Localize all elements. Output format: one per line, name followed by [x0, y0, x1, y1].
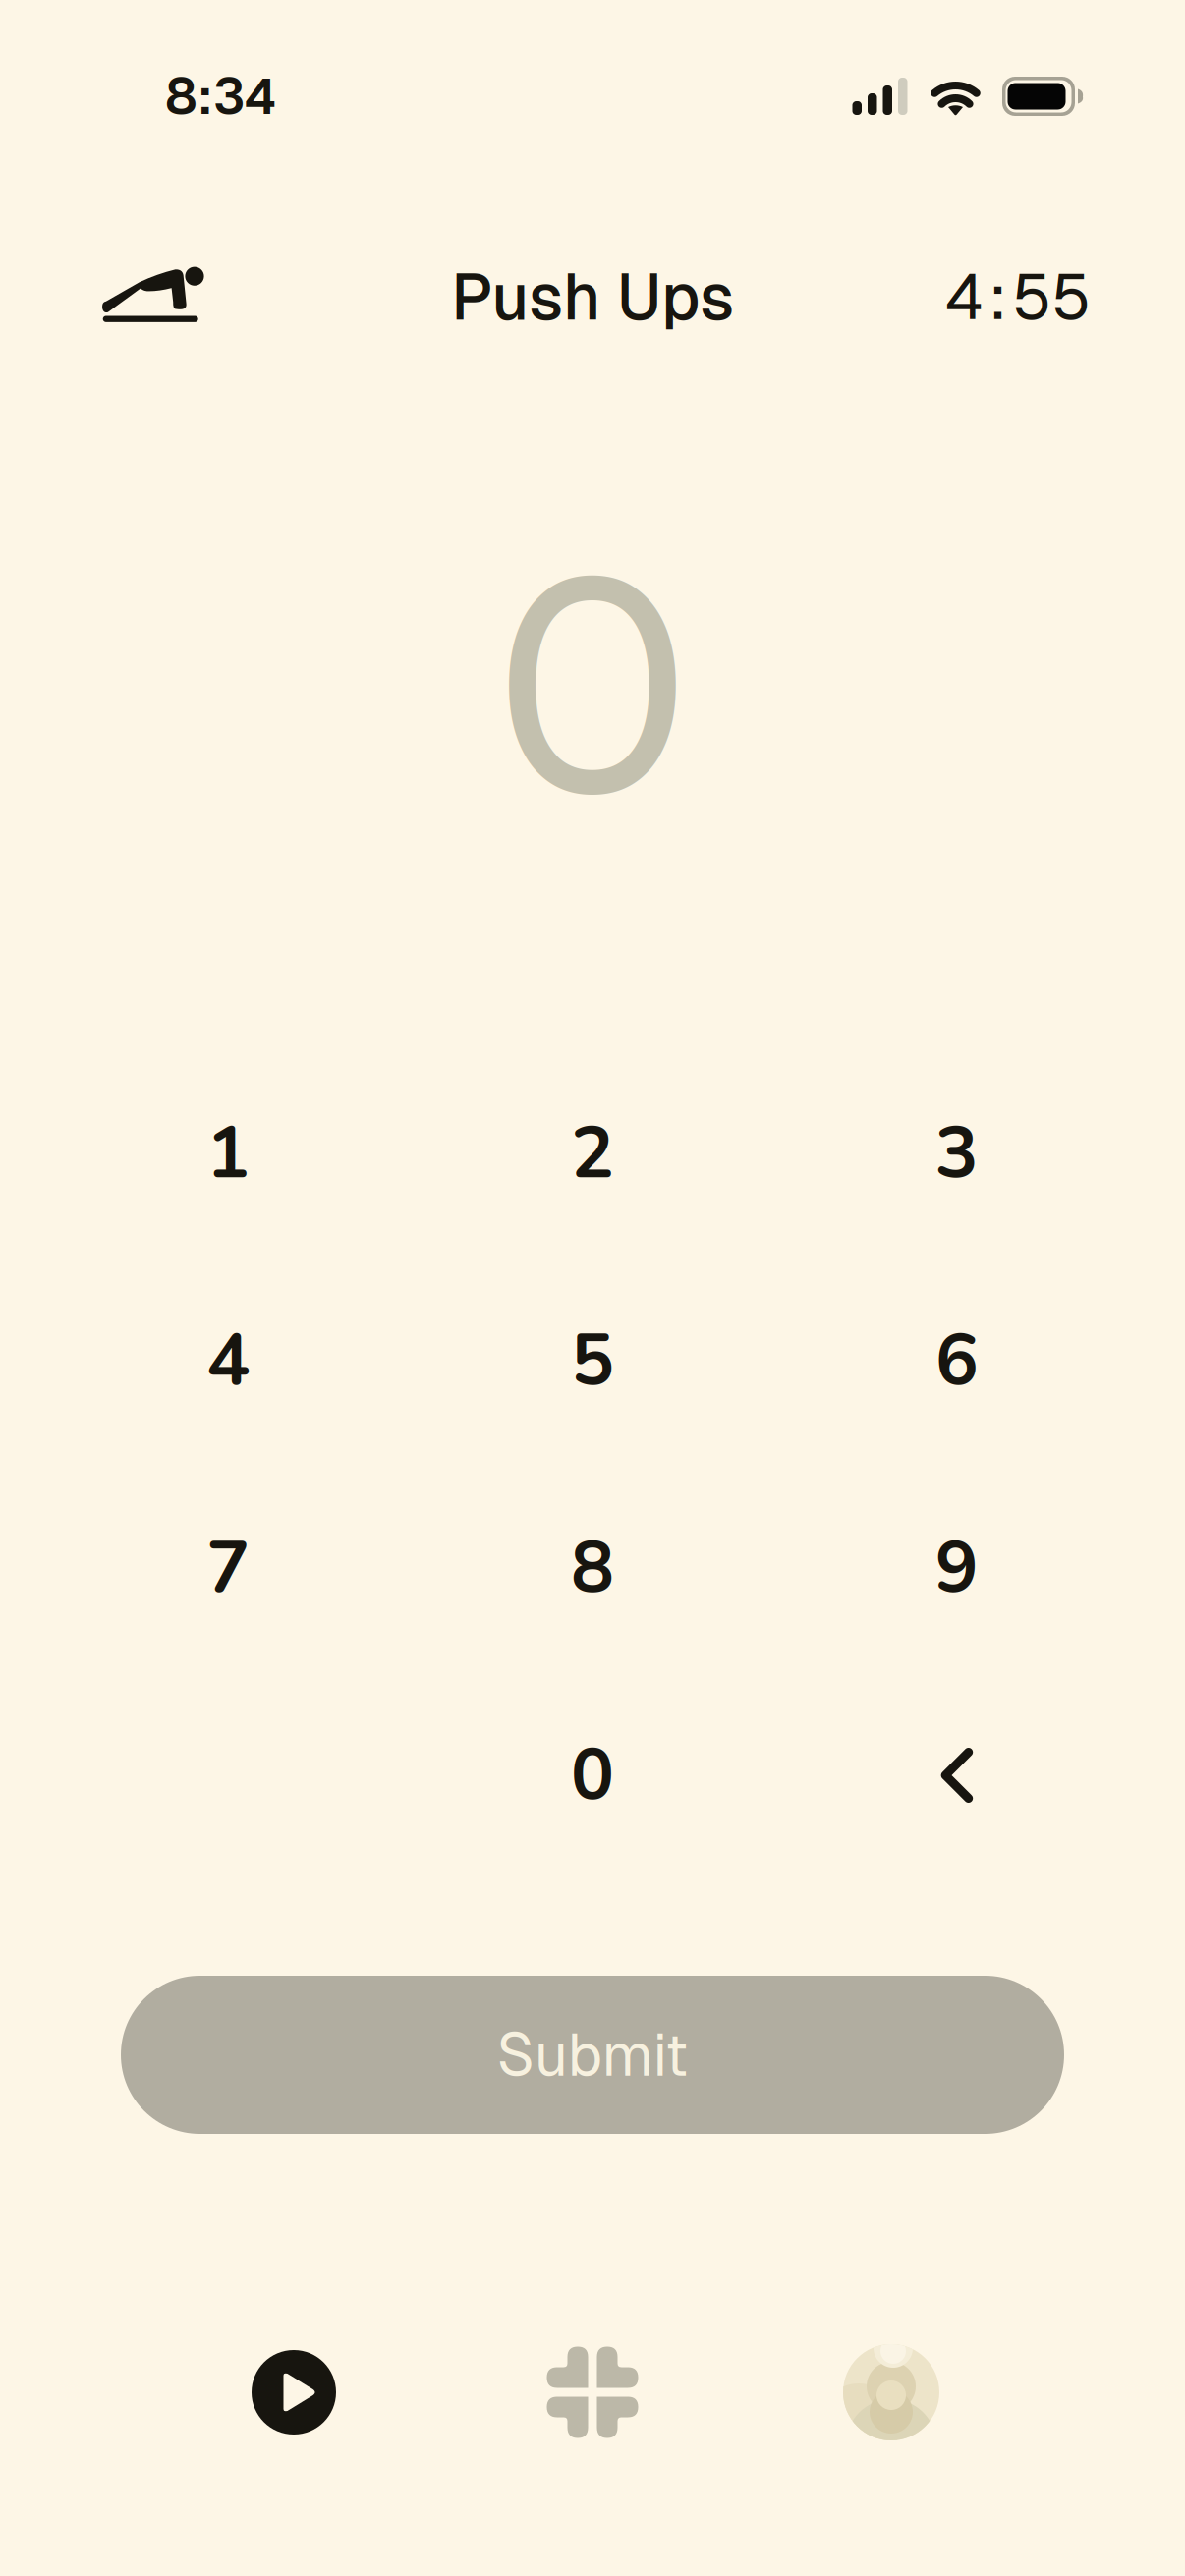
button[interactable]: 4 [46, 1292, 410, 1429]
button[interactable]: 5 [410, 1292, 775, 1429]
button[interactable]: 4 [945, 248, 1091, 346]
button[interactable]: Submit [121, 1976, 1064, 2134]
button[interactable]: 6 [775, 1292, 1139, 1429]
staticText: 55 [1012, 256, 1091, 338]
staticText: 6 [935, 1312, 978, 1410]
staticText: Submit [497, 2016, 688, 2093]
button[interactable]: Delete [775, 1707, 1139, 1844]
staticText: 3 [935, 1104, 978, 1203]
staticText: 4 [945, 256, 984, 338]
button[interactable]: 0 [410, 1707, 775, 1844]
button[interactable]: Exercise info [94, 248, 207, 346]
staticText: 0 [571, 1726, 614, 1824]
button[interactable]: 2 [410, 1085, 775, 1222]
button[interactable]: 7 [46, 1499, 410, 1637]
staticText: 4 [207, 1312, 250, 1410]
button[interactable]: Workouts [144, 2343, 443, 2441]
button[interactable]: 9 [775, 1499, 1139, 1637]
staticText: 9 [935, 1519, 978, 1617]
staticText: 5 [571, 1312, 614, 1410]
staticText: 0 [494, 492, 691, 877]
staticText: : [988, 256, 1007, 338]
button[interactable]: Profile [742, 2343, 1041, 2441]
button[interactable]: 8 [410, 1499, 775, 1637]
button[interactable]: 1 [46, 1085, 410, 1222]
staticText: 1 [207, 1104, 250, 1203]
button[interactable]: 3 [775, 1085, 1139, 1222]
staticText: 8:34 [165, 64, 277, 129]
staticText: 8 [571, 1519, 614, 1617]
button[interactable]: Discover [443, 2343, 742, 2441]
staticText: 7 [207, 1519, 250, 1617]
staticText: 2 [571, 1104, 614, 1203]
staticText: Push Ups [451, 255, 734, 338]
